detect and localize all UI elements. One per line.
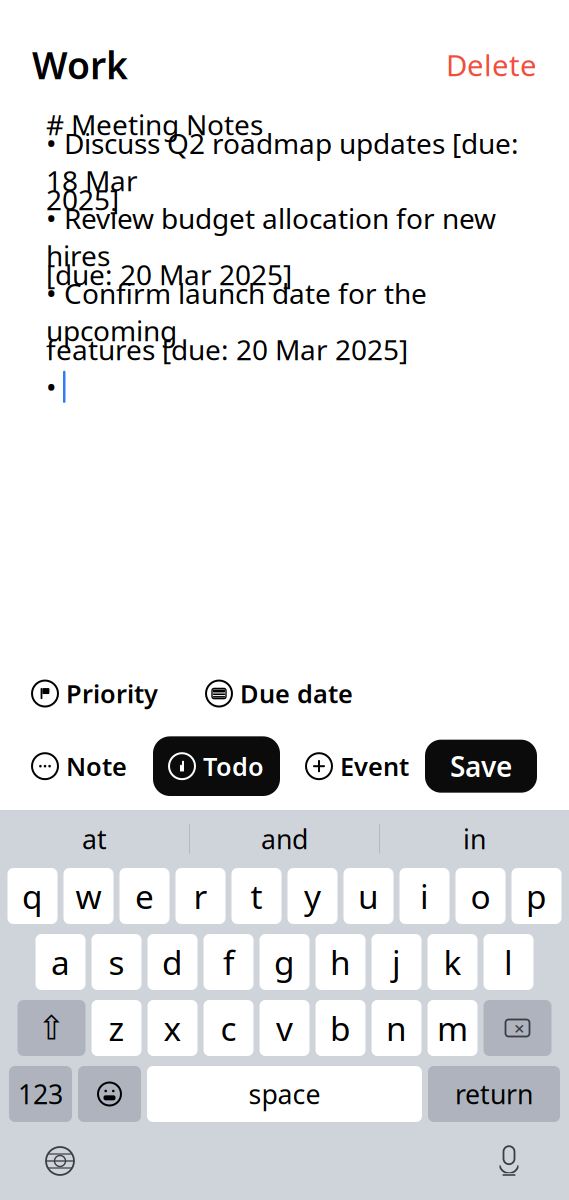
button[interactable]: m bbox=[427, 1000, 477, 1056]
staticText: p bbox=[526, 874, 547, 918]
button[interactable]: 123 bbox=[9, 1066, 72, 1122]
button[interactable]: g bbox=[259, 934, 309, 990]
staticText: Work bbox=[32, 40, 128, 90]
staticText: • Discuss Q2 roadmap updates [due: 18 Ma… bbox=[46, 125, 519, 199]
staticText: Todo bbox=[203, 749, 264, 783]
staticText: t bbox=[250, 874, 262, 918]
button[interactable]: e bbox=[119, 868, 169, 924]
button[interactable]: Event bbox=[306, 749, 409, 783]
button[interactable]: Note bbox=[32, 749, 127, 783]
button[interactable]: c bbox=[203, 1000, 253, 1056]
button[interactable]: u bbox=[343, 868, 393, 924]
button[interactable]: f bbox=[203, 934, 253, 990]
staticText: x bbox=[163, 1006, 181, 1050]
button[interactable]: Due date bbox=[206, 677, 353, 710]
button[interactable]: x bbox=[147, 1000, 197, 1056]
button[interactable]: a bbox=[35, 934, 85, 990]
staticText: i bbox=[420, 874, 429, 918]
button[interactable]: return bbox=[428, 1066, 560, 1122]
staticText: w bbox=[75, 874, 101, 918]
staticText: g bbox=[274, 940, 295, 984]
staticText: q bbox=[22, 874, 43, 918]
staticText: o bbox=[470, 874, 490, 918]
staticText: z bbox=[108, 1006, 124, 1050]
button[interactable]: Save bbox=[425, 740, 537, 793]
staticText: 2025] bbox=[46, 181, 119, 218]
staticText: Note bbox=[66, 749, 127, 783]
staticText: at bbox=[82, 821, 107, 857]
staticText: 123 bbox=[18, 1076, 63, 1112]
button[interactable]: Delete bbox=[483, 1000, 551, 1056]
staticText: v bbox=[276, 1006, 293, 1050]
button[interactable]: z bbox=[91, 1000, 141, 1056]
button[interactable]: v bbox=[259, 1000, 309, 1056]
staticText: [due: 20 Mar 2025] bbox=[46, 256, 292, 293]
button[interactable]: s bbox=[91, 934, 141, 990]
staticText: × bbox=[514, 1016, 525, 1040]
button[interactable]: Delete bbox=[446, 45, 537, 84]
staticText: d bbox=[162, 940, 183, 984]
staticText: Delete bbox=[446, 45, 537, 84]
staticText: k bbox=[443, 940, 461, 984]
staticText: b bbox=[330, 1006, 351, 1050]
button[interactable]: and bbox=[190, 816, 379, 862]
staticText: e bbox=[135, 874, 154, 918]
button[interactable]: j bbox=[371, 934, 421, 990]
button[interactable]: q bbox=[7, 868, 57, 924]
button[interactable]: at bbox=[0, 816, 189, 862]
button[interactable]: y bbox=[287, 868, 337, 924]
staticText: Save bbox=[450, 748, 512, 785]
button[interactable]: d bbox=[147, 934, 197, 990]
button[interactable]: o bbox=[455, 868, 505, 924]
staticText: f bbox=[223, 940, 234, 984]
staticText: ⇧ bbox=[37, 1009, 65, 1047]
button[interactable]: Shift bbox=[17, 1000, 85, 1056]
staticText: h bbox=[330, 940, 351, 984]
button[interactable]: Emoji bbox=[78, 1066, 141, 1122]
staticText: Event bbox=[340, 749, 409, 783]
staticText: u bbox=[358, 874, 379, 918]
staticText: # Meeting Notes bbox=[46, 106, 263, 143]
button[interactable]: Priority bbox=[32, 677, 158, 710]
button[interactable]: Next keyboard bbox=[45, 1146, 75, 1176]
staticText: Priority bbox=[66, 677, 158, 710]
button[interactable]: i bbox=[399, 868, 449, 924]
staticText: r bbox=[193, 874, 207, 918]
staticText: n bbox=[386, 1006, 407, 1050]
staticText: in bbox=[463, 821, 486, 857]
button[interactable]: b bbox=[315, 1000, 365, 1056]
staticText: y bbox=[304, 874, 321, 918]
button[interactable]: k bbox=[427, 934, 477, 990]
staticText: j bbox=[392, 940, 401, 984]
staticText: a bbox=[51, 940, 70, 984]
staticText: • bbox=[46, 368, 57, 405]
button[interactable]: space bbox=[147, 1066, 422, 1122]
button[interactable]: n bbox=[371, 1000, 421, 1056]
button[interactable]: r bbox=[175, 868, 225, 924]
staticText: • Review budget allocation for new hires bbox=[46, 200, 496, 274]
staticText: m bbox=[437, 1006, 468, 1050]
button[interactable]: Todo bbox=[153, 736, 280, 796]
staticText: c bbox=[220, 1006, 236, 1050]
button[interactable]: h bbox=[315, 934, 365, 990]
staticText: features [due: 20 Mar 2025] bbox=[46, 331, 408, 368]
button[interactable]: p bbox=[511, 868, 561, 924]
button[interactable]: l bbox=[483, 934, 533, 990]
staticText: and bbox=[261, 821, 308, 857]
staticText: return bbox=[455, 1076, 533, 1112]
staticText: space bbox=[248, 1076, 320, 1112]
button[interactable]: w bbox=[63, 868, 113, 924]
staticText: l bbox=[504, 940, 513, 984]
button[interactable]: Dictate bbox=[494, 1145, 524, 1177]
staticText: Due date bbox=[240, 677, 353, 710]
button[interactable]: t bbox=[231, 868, 281, 924]
staticText: s bbox=[108, 940, 124, 984]
staticText: • Confirm launch date for the upcoming bbox=[46, 275, 427, 349]
button[interactable]: in bbox=[380, 816, 569, 862]
